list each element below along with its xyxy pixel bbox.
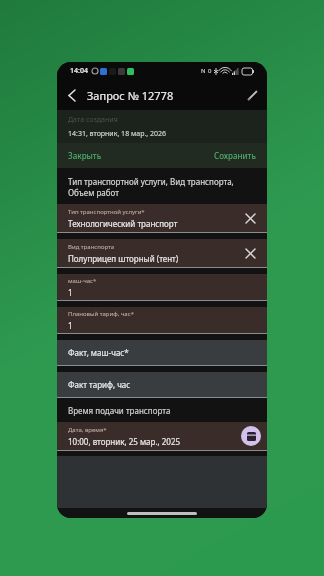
staticText: маш-час* [68, 277, 97, 285]
button[interactable]: Редактировать [237, 80, 267, 110]
staticText: 1 [68, 320, 73, 331]
button[interactable]: маш-час* [57, 274, 267, 301]
staticText: Плановый тариф, час* [68, 310, 134, 318]
button[interactable]: Очистить [239, 207, 261, 229]
button[interactable]: Выбрать дату [241, 426, 261, 446]
staticText: Дата, время* [68, 426, 107, 434]
staticText: Сохранить [214, 150, 256, 161]
staticText: Запрос № 12778 [87, 88, 174, 103]
button[interactable]: Факт тариф, час [57, 372, 267, 398]
staticText: 1 [68, 287, 73, 298]
staticText: Факт, маш-час* [68, 347, 129, 358]
staticText: Вид транспорта [68, 243, 115, 251]
staticText: Полуприцеп шторный (тент) [68, 253, 179, 264]
staticText: 14:04 [70, 66, 88, 76]
button[interactable]: Вид транспорта [57, 239, 267, 268]
staticText: N [201, 67, 206, 75]
staticText: 10:00, вторник, 25 мар., 2025 [68, 436, 181, 447]
button[interactable]: Назад [57, 80, 87, 110]
button[interactable]: Тип транспортной услуги* [57, 204, 267, 233]
button[interactable]: Дата, время* [57, 422, 267, 451]
button[interactable]: Сохранить [206, 150, 267, 161]
staticText: Факт тариф, час [68, 379, 131, 390]
staticText: Дата создания [68, 115, 118, 125]
button[interactable]: Факт, маш-час* [57, 340, 267, 366]
staticText: 0 [208, 67, 212, 75]
staticText: Тип транспортной услуги, Вид транспорта,… [68, 176, 256, 198]
staticText: Время подачи транспорта [68, 405, 171, 416]
staticText: Закрыть [68, 150, 102, 161]
staticText: 14:31, вторник, 18 мар., 2026 [68, 129, 167, 139]
staticText: Тип транспортной услуги* [68, 208, 145, 216]
button[interactable]: Очистить [239, 242, 261, 264]
staticText: Технологический транспорт [68, 218, 178, 229]
button[interactable]: Плановый тариф, час* [57, 307, 267, 334]
button[interactable]: Закрыть [57, 150, 110, 161]
